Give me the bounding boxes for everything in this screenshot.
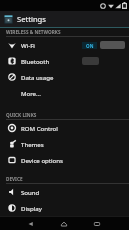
staticText: DEVICE [6,176,23,182]
staticText: Device options [21,156,63,164]
staticText: QUICK LINKS [6,112,37,118]
button[interactable]: Home [50,217,78,230]
button[interactable]: Display [0,200,129,216]
button[interactable]: ROM Control [0,120,129,136]
button[interactable]: Settings [0,11,129,27]
staticText: Wi-Fi [21,41,35,49]
staticText: Bluetooth [21,57,50,65]
staticText: ON [86,43,94,49]
button[interactable]: Bluetooth [0,53,129,69]
button[interactable]: More... [0,85,129,101]
button[interactable]: Wi-Fi [0,37,129,53]
button[interactable]: Sound [0,184,129,200]
button[interactable]: Device options [0,152,129,168]
button[interactable]: Data usage [0,69,129,85]
staticText: Data usage [21,73,54,81]
button[interactable]: Themes [0,136,129,152]
staticText: Sound [21,188,40,196]
button[interactable]: Back [16,217,44,230]
button[interactable]: Recent apps [83,217,111,230]
staticText: ROM Control [21,124,58,132]
staticText: Settings [17,14,46,24]
staticText: More... [21,89,41,97]
staticText: WIRELESS & NETWORKS [6,29,61,35]
staticText: Themes [21,140,44,148]
staticText: Display [21,204,42,212]
